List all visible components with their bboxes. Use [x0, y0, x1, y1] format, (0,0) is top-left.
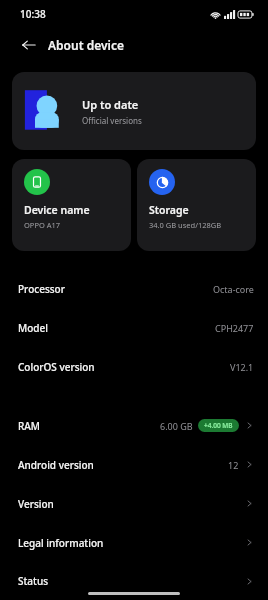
staticText: Octa-core [213, 283, 254, 295]
staticText: RAM [18, 419, 41, 433]
staticText: Version [18, 497, 54, 511]
staticText: Storage [149, 203, 189, 217]
button[interactable]: Status [0, 562, 268, 600]
button[interactable]: Up to date [12, 72, 256, 150]
staticText: Up to date [82, 97, 139, 112]
staticText: 10:38 [20, 7, 46, 21]
staticText: Official versions [82, 115, 142, 126]
staticText: 6.00 GB [160, 420, 193, 432]
staticText: Status [18, 574, 49, 588]
button[interactable]: Version [0, 484, 268, 523]
button[interactable]: Storage [137, 159, 256, 251]
button[interactable]: Android version [0, 445, 268, 484]
button[interactable]: RAM [0, 406, 268, 445]
staticText: Legal information [18, 536, 104, 550]
button[interactable]: ColorOS version [0, 347, 268, 386]
button[interactable]: Model [0, 308, 268, 347]
staticText: About device [48, 37, 124, 53]
button[interactable]: Device name [12, 159, 131, 251]
staticText: Model [18, 321, 48, 335]
staticText: 34.0 GB used/128GB [149, 220, 222, 230]
staticText: V12.1 [230, 361, 254, 373]
staticText: OPPO A17 [24, 220, 61, 230]
staticText: CPH2477 [215, 322, 254, 334]
staticText: ColorOS version [18, 360, 95, 374]
staticText: 12 [228, 459, 239, 471]
button[interactable]: Legal information [0, 523, 268, 562]
staticText: Device name [24, 203, 90, 217]
button[interactable]: Processor [0, 269, 268, 308]
staticText: Android version [18, 458, 94, 472]
button[interactable]: Back [16, 32, 42, 58]
staticText: Processor [18, 282, 65, 296]
staticText: +4.00 MB [204, 421, 233, 430]
